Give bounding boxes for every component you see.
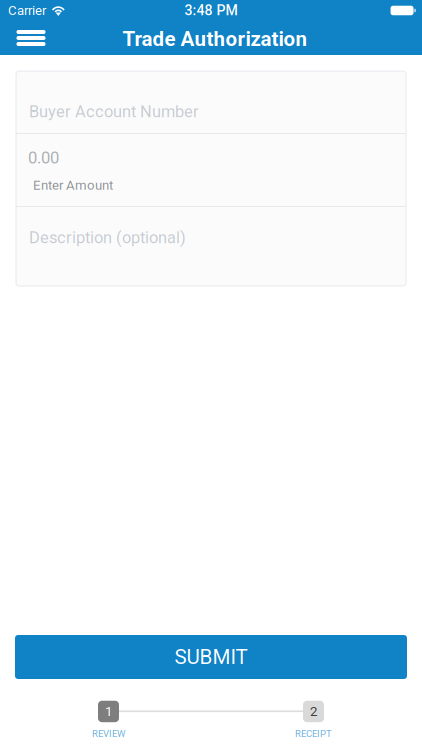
button[interactable]: SUBMIT (15, 635, 407, 679)
staticText: 0.00 (28, 148, 59, 167)
staticText: Trade Authorization (122, 27, 307, 51)
button[interactable]: Buyer Account Number (16, 71, 406, 133)
staticText: SUBMIT (174, 645, 247, 669)
button[interactable]: 2 (283, 702, 343, 738)
staticText: Description (optional) (29, 228, 186, 247)
button[interactable]: 1 (78, 702, 138, 738)
staticText: REVIEW (92, 728, 125, 739)
staticText: Buyer Account Number (29, 102, 199, 121)
staticText: 2 (310, 704, 317, 719)
staticText: 3:48 PM (184, 2, 237, 19)
staticText: Enter Amount (33, 177, 113, 193)
staticText: 1 (105, 704, 112, 719)
staticText: RECEIPT (295, 728, 332, 739)
staticText: Carrier (8, 3, 46, 18)
button[interactable]: Description (optional) (16, 207, 406, 286)
button[interactable]: 0.00 (16, 134, 406, 206)
button[interactable]: Menu (1, 21, 61, 55)
